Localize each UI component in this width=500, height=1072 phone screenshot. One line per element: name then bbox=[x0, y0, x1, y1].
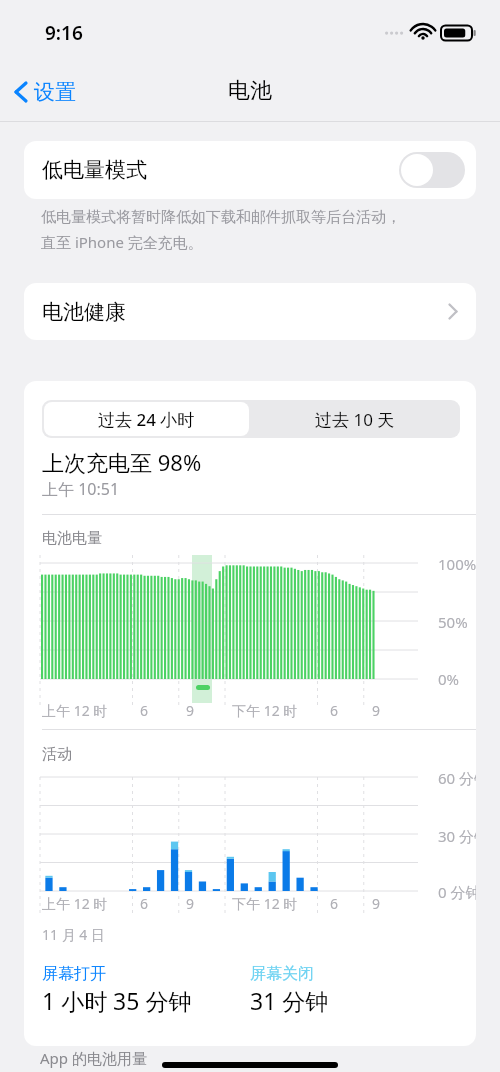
other: 返回设置 bbox=[14, 80, 28, 104]
staticText: 上次充电至 98% bbox=[42, 447, 202, 477]
staticText: 9:16 bbox=[45, 20, 83, 46]
staticText: 电池电量 bbox=[42, 529, 102, 548]
staticText: 6 bbox=[330, 701, 339, 720]
staticText: 9 bbox=[186, 894, 195, 913]
staticText: 过去 10 天 bbox=[315, 408, 395, 431]
button[interactable]: 低电量模式 bbox=[24, 141, 476, 199]
staticText: 9 bbox=[372, 701, 381, 720]
staticText: App 的电池用量 bbox=[40, 1048, 147, 1068]
staticText: 活动 bbox=[42, 745, 72, 764]
staticText: 60 分钟 bbox=[438, 768, 476, 788]
staticText: 6 bbox=[330, 894, 339, 913]
button[interactable]: 过去 24 小时 bbox=[44, 402, 249, 436]
staticText: 上午 12 时 bbox=[42, 701, 108, 720]
staticText: 低电量模式将暂时降低如下载和邮件抓取等后台活动， bbox=[41, 208, 401, 227]
staticText: 100% bbox=[438, 554, 476, 574]
staticText: 6 bbox=[140, 894, 149, 913]
staticText: 0% bbox=[438, 669, 460, 689]
staticText: 11 月 4 日 bbox=[42, 925, 105, 944]
button[interactable]: 过去 10 天 bbox=[251, 400, 458, 438]
staticText: 50% bbox=[438, 612, 468, 632]
staticText: 30 分钟 bbox=[438, 826, 476, 846]
staticText: 直至 iPhone 完全充电。 bbox=[41, 232, 203, 252]
staticText: 下午 12 时 bbox=[232, 701, 298, 720]
staticText: 31 分钟 bbox=[250, 985, 329, 1016]
staticText: 1 小时 35 分钟 bbox=[42, 985, 192, 1016]
staticText: 电池健康 bbox=[42, 299, 126, 325]
staticText: 屏幕关闭 bbox=[250, 964, 314, 984]
staticText: 上午 12 时 bbox=[42, 894, 108, 913]
staticText: 9 bbox=[372, 894, 381, 913]
staticText: 屏幕打开 bbox=[42, 964, 106, 984]
staticText: 0 分钟 bbox=[438, 882, 476, 902]
button[interactable]: 返回设置 bbox=[14, 72, 76, 112]
staticText: 9 bbox=[186, 701, 195, 720]
button[interactable]: 低电量模式开关 bbox=[399, 152, 465, 188]
button[interactable]: 电池健康 bbox=[24, 283, 476, 340]
staticText: 电池 bbox=[228, 77, 272, 105]
staticText: 上午 10:51 bbox=[42, 478, 120, 500]
staticText: 过去 24 小时 bbox=[98, 408, 195, 431]
staticText: 设置 bbox=[34, 79, 76, 105]
staticText: 6 bbox=[140, 701, 149, 720]
staticText: 低电量模式 bbox=[42, 157, 147, 183]
staticText: 下午 12 时 bbox=[232, 894, 298, 913]
